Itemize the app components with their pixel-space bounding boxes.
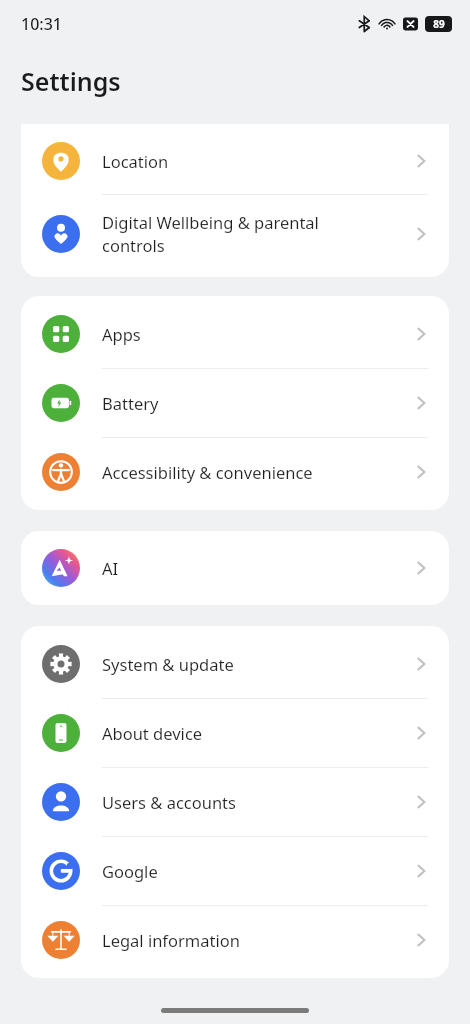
button[interactable]: Location — [21, 128, 449, 194]
staticText: Google — [102, 860, 405, 882]
staticText: 10:31 — [21, 13, 62, 35]
button[interactable]: Apps — [21, 300, 449, 368]
button[interactable]: About device — [21, 699, 449, 767]
button[interactable]: Legal information — [21, 906, 449, 974]
button[interactable]: Users & accounts — [21, 768, 449, 836]
staticText: Location — [102, 150, 405, 172]
staticText: 89 — [433, 17, 445, 31]
staticText: Battery — [102, 392, 405, 414]
staticText: Digital Wellbeing & parental controls — [102, 211, 405, 257]
staticText: System & update — [102, 653, 405, 675]
button[interactable]: Digital Wellbeing & parental controls — [21, 195, 449, 273]
button[interactable]: System & update — [21, 630, 449, 698]
staticText: AI — [102, 557, 405, 579]
staticText: Users & accounts — [102, 791, 405, 813]
button[interactable]: Battery — [21, 369, 449, 437]
other: Home indicator — [161, 1008, 309, 1013]
staticText: Legal information — [102, 929, 405, 951]
staticText: Accessibility & convenience — [102, 461, 405, 483]
staticText: About device — [102, 722, 405, 744]
button[interactable]: AI — [21, 535, 449, 601]
button[interactable]: Google — [21, 837, 449, 905]
button[interactable]: Accessibility & convenience — [21, 438, 449, 506]
staticText: Apps — [102, 323, 405, 345]
staticText: Settings — [21, 64, 121, 98]
